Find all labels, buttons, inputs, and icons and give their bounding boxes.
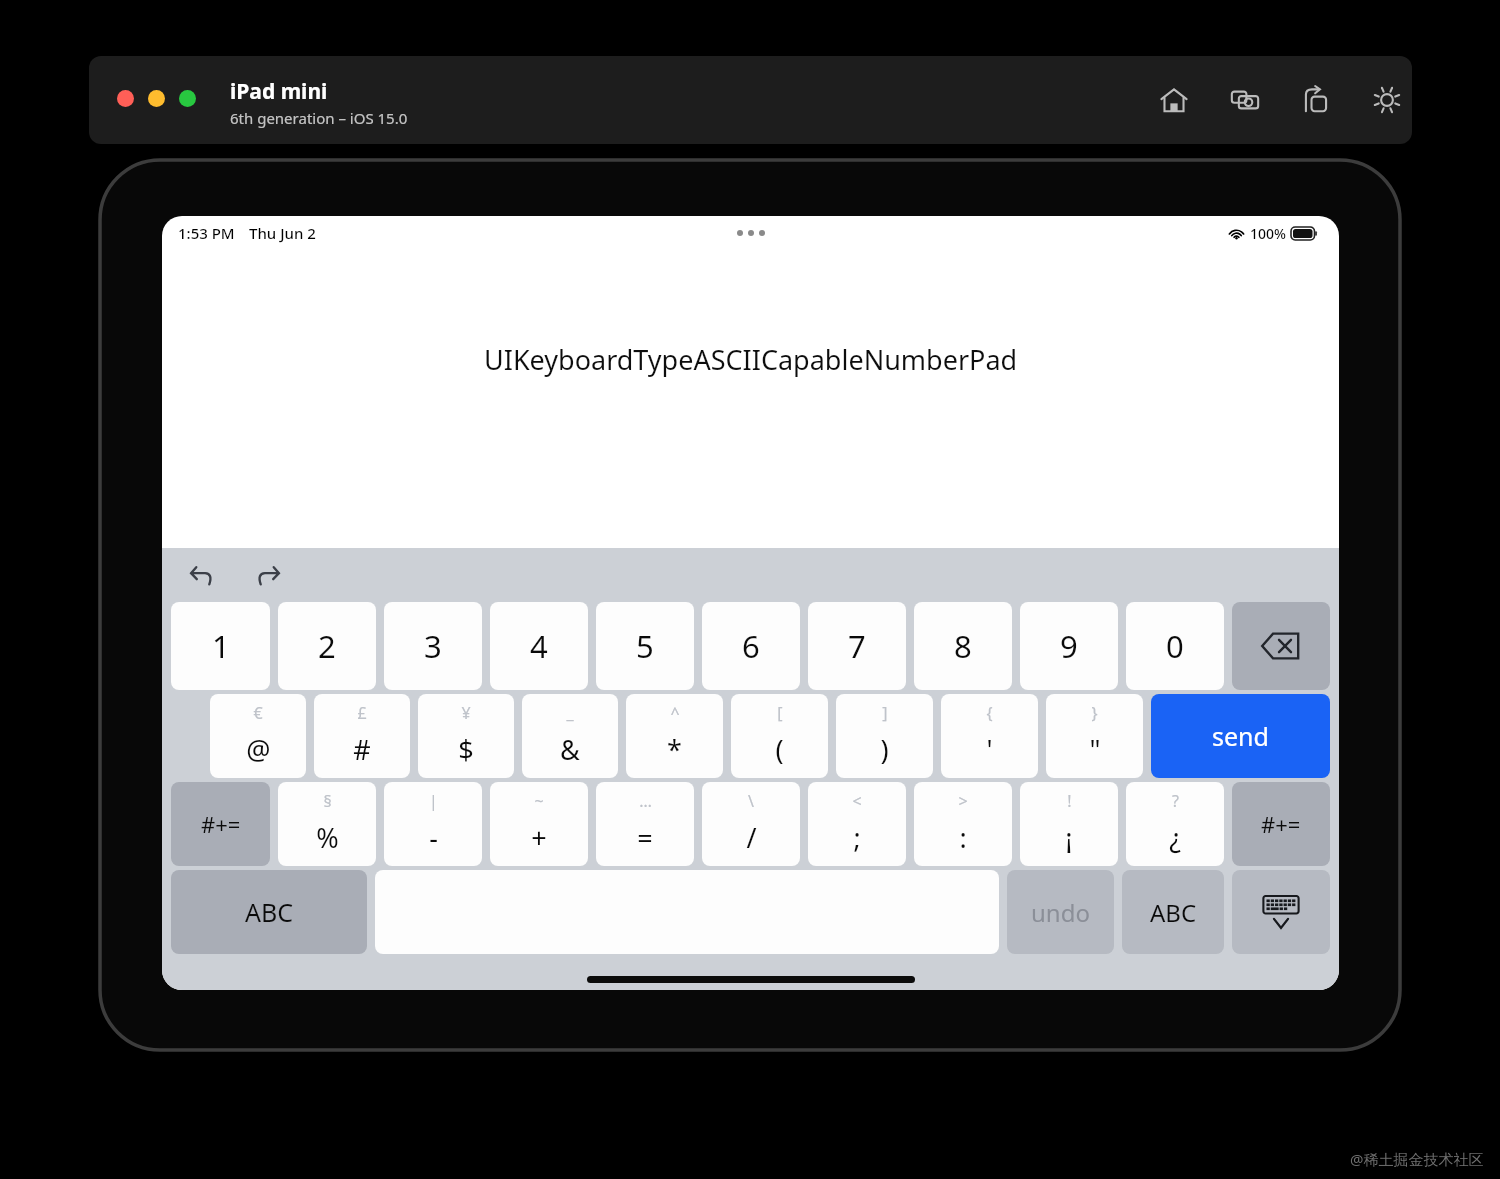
staticText: Thu Jun 2	[249, 223, 316, 243]
staticText: 8	[954, 625, 972, 667]
button[interactable]: 8	[914, 602, 1012, 690]
button[interactable]: }	[1046, 694, 1143, 778]
staticText: !	[1067, 790, 1072, 812]
staticText: #+=	[201, 809, 241, 839]
staticText: 2	[318, 625, 336, 667]
button[interactable]: 6	[702, 602, 800, 690]
staticText: 5	[636, 625, 654, 667]
staticText: /	[746, 819, 757, 856]
staticText: £	[357, 702, 367, 724]
button[interactable]: 5	[596, 602, 694, 690]
button[interactable]: Home	[1155, 81, 1193, 119]
staticText: $	[458, 731, 474, 768]
button[interactable]: _	[522, 694, 618, 778]
staticText: €	[253, 702, 263, 724]
button[interactable]: ¥	[418, 694, 514, 778]
staticText: ]	[882, 702, 888, 724]
staticText: 6th generation – iOS 15.0	[230, 108, 408, 128]
staticText: 100%	[1250, 224, 1286, 243]
staticText: @	[246, 731, 271, 768]
staticText: "	[1089, 731, 1101, 768]
button[interactable]: 1	[171, 602, 270, 690]
button[interactable]: Minimize	[148, 90, 165, 107]
staticText: *	[667, 731, 682, 768]
button[interactable]: ^	[626, 694, 723, 778]
staticText: %	[316, 819, 339, 856]
staticText: }	[1091, 702, 1098, 724]
staticText: iPad mini	[230, 77, 328, 106]
staticText: 7	[848, 625, 866, 667]
staticText: ¿	[1169, 819, 1181, 856]
button[interactable]: !	[1020, 782, 1118, 866]
button[interactable]: §	[278, 782, 376, 866]
button[interactable]: Screenshot	[1226, 81, 1264, 119]
staticText: |	[429, 790, 438, 812]
staticText: ?	[1172, 790, 1179, 812]
staticText: 4	[530, 625, 548, 667]
staticText: >	[958, 790, 968, 812]
button[interactable]: <	[808, 782, 906, 866]
staticText: ¡	[1065, 819, 1073, 856]
button[interactable]: 0	[1126, 602, 1224, 690]
staticText: \	[748, 790, 754, 812]
button[interactable]: ABC	[1122, 870, 1224, 954]
button[interactable]: Appearance	[1368, 81, 1406, 119]
staticText: +	[531, 819, 547, 856]
staticText: [	[777, 702, 783, 724]
button[interactable]: ]	[836, 694, 933, 778]
staticText: 6	[742, 625, 760, 667]
staticText: ~	[534, 790, 544, 812]
staticText: 1:53 PM	[178, 223, 235, 243]
button[interactable]: #+=	[1232, 782, 1330, 866]
button[interactable]: €	[210, 694, 306, 778]
button[interactable]: Close	[117, 90, 134, 107]
staticText: …	[639, 790, 652, 812]
button[interactable]: 2	[278, 602, 376, 690]
button[interactable]: Undo	[182, 555, 222, 595]
button[interactable]: undo	[1007, 870, 1114, 954]
button[interactable]: [	[731, 694, 828, 778]
staticText: _	[566, 702, 574, 724]
button[interactable]: {	[941, 694, 1038, 778]
staticText: #	[353, 731, 371, 768]
staticText: 1	[212, 625, 230, 667]
staticText: 0	[1166, 625, 1184, 667]
staticText: =	[637, 819, 653, 856]
button[interactable]: ABC	[171, 870, 367, 954]
staticText: -	[429, 819, 438, 856]
staticText: undo	[1031, 896, 1090, 929]
staticText: :	[959, 819, 967, 856]
button[interactable]: ?	[1126, 782, 1224, 866]
staticText: 3	[424, 625, 442, 667]
staticText: UIKeyboardTypeASCIICapableNumberPad	[484, 341, 1018, 378]
staticText: #+=	[1261, 809, 1301, 839]
staticText: 9	[1060, 625, 1078, 667]
button[interactable]: >	[914, 782, 1012, 866]
button[interactable]: \	[702, 782, 800, 866]
button[interactable]: #+=	[171, 782, 270, 866]
staticText: ABC	[1150, 896, 1197, 929]
staticText: <	[852, 790, 862, 812]
button[interactable]: Redo	[248, 555, 288, 595]
staticText: (	[775, 731, 784, 768]
staticText: {	[986, 702, 993, 724]
button[interactable]: ~	[490, 782, 588, 866]
button[interactable]: Rotate	[1297, 81, 1335, 119]
button[interactable]: Maximize	[179, 90, 196, 107]
button[interactable]: 7	[808, 602, 906, 690]
button[interactable]: send	[1151, 694, 1330, 778]
staticText: §	[323, 790, 332, 812]
staticText: &	[560, 731, 580, 768]
button[interactable]: Backspace	[1232, 602, 1330, 690]
staticText: @稀土掘金技术社区	[1350, 1149, 1484, 1169]
staticText: ^	[670, 702, 680, 724]
button[interactable]: Hide keyboard	[1232, 870, 1330, 954]
button[interactable]: |	[384, 782, 482, 866]
staticText: ¥	[461, 702, 471, 724]
button[interactable]: 3	[384, 602, 482, 690]
button[interactable]: £	[314, 694, 410, 778]
button[interactable]: 9	[1020, 602, 1118, 690]
button[interactable]: 4	[490, 602, 588, 690]
button[interactable]: …	[596, 782, 694, 866]
